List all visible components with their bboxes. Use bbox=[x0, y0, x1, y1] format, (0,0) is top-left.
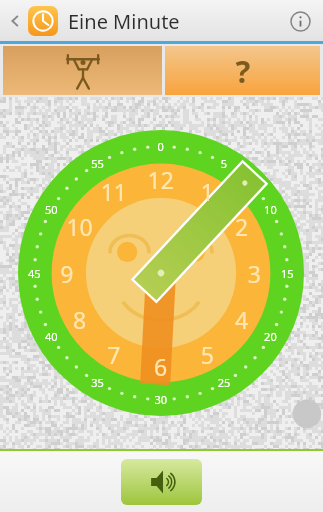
button[interactable]: Info bbox=[285, 6, 315, 36]
button[interactable]: Play sound bbox=[121, 459, 202, 505]
button[interactable]: Exercise bbox=[3, 46, 162, 95]
button[interactable]: Help bbox=[165, 46, 320, 95]
button[interactable]: Back bbox=[2, 8, 28, 34]
